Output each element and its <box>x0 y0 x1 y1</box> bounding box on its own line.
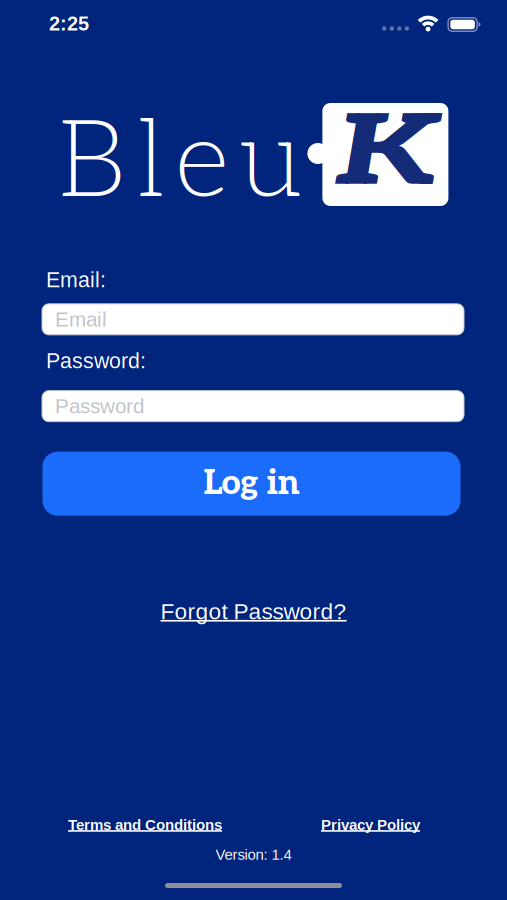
button[interactable]: Privacy Policy <box>321 816 420 833</box>
staticText: Email: <box>46 268 106 292</box>
staticText: 2:25 <box>49 12 89 35</box>
staticText: l <box>137 99 163 227</box>
button[interactable]: Log in <box>44 452 462 516</box>
staticText: Terms and Conditions <box>68 816 222 833</box>
button[interactable]: Email field <box>42 304 464 335</box>
staticText: Forgot Password? <box>160 599 346 624</box>
staticText: Email <box>55 308 107 331</box>
staticText: e <box>176 99 228 227</box>
staticText: Log in <box>203 463 299 504</box>
staticText: Password <box>55 395 144 418</box>
staticText: Version: 1.4 <box>215 846 291 863</box>
staticText: u <box>240 99 301 227</box>
staticText: Password: <box>46 349 146 373</box>
staticText: B <box>59 99 125 227</box>
staticText: K <box>351 97 423 212</box>
button[interactable]: Password field <box>42 391 464 422</box>
staticText: Privacy Policy <box>321 816 420 833</box>
button[interactable]: Forgot Password? <box>160 599 346 624</box>
button[interactable]: Terms and Conditions <box>68 816 222 833</box>
